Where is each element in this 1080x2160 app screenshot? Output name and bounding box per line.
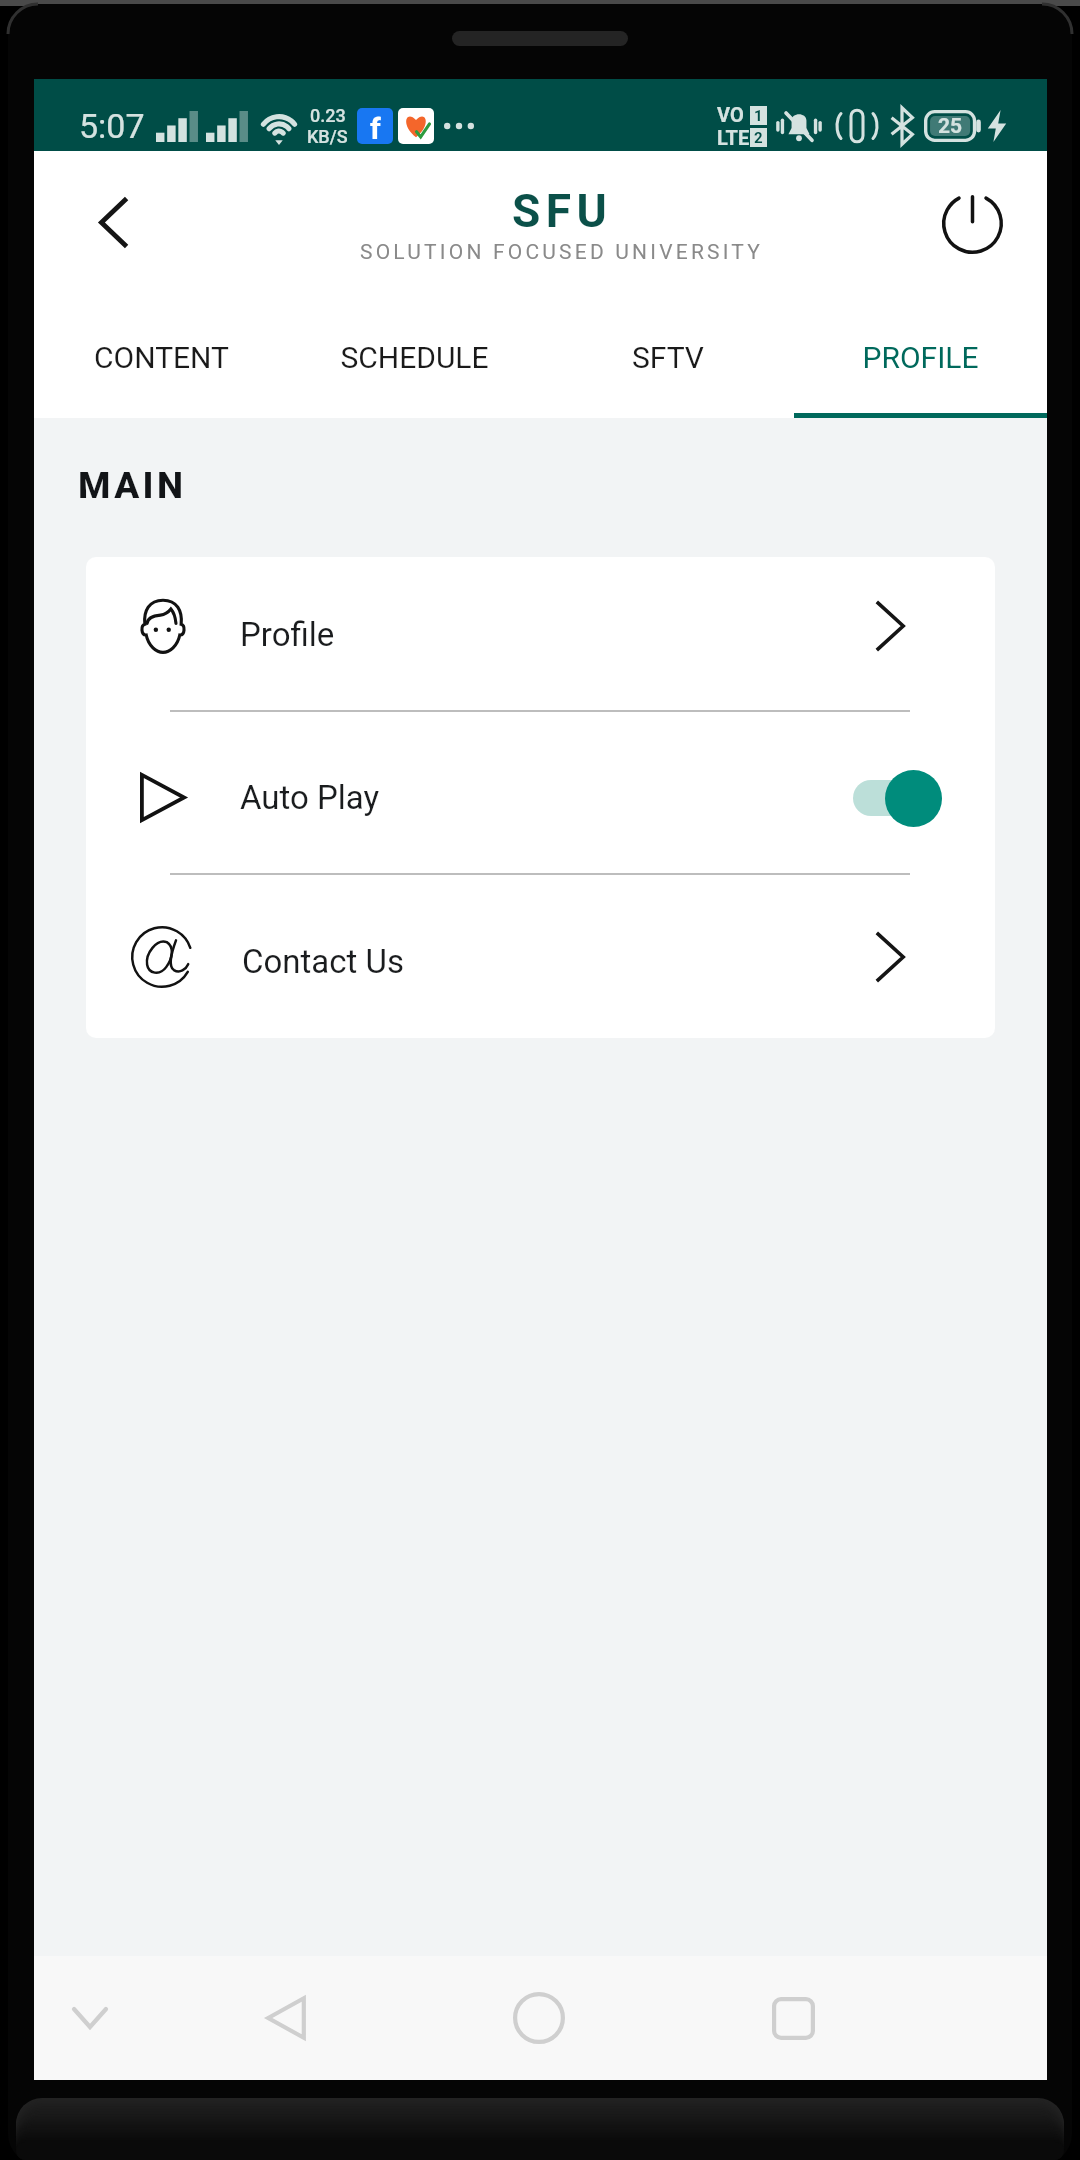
staticText: MAIN [78, 464, 187, 507]
button[interactable]: PROFILE [794, 306, 1047, 418]
button[interactable]: Profile [86, 557, 995, 710]
button[interactable]: Back [74, 186, 160, 272]
staticText: CONTENT [94, 340, 229, 375]
button[interactable]: SFTV [541, 306, 794, 418]
staticText: Auto Play [240, 778, 380, 817]
staticText: Contact Us [242, 942, 404, 981]
button[interactable]: SCHEDULE [288, 306, 541, 418]
staticText: SOLUTION FOCUSED UNIVERSITY [360, 240, 764, 265]
button[interactable]: Home [499, 1956, 579, 2080]
staticText: SFTV [632, 340, 704, 375]
button[interactable]: Recent apps [753, 1956, 833, 2080]
staticText: Profile [240, 615, 335, 654]
staticText: VO [717, 103, 744, 126]
button[interactable]: Contact Us [86, 875, 995, 1038]
button[interactable]: Auto Play [86, 712, 995, 873]
button[interactable]: Hide keyboard [50, 1956, 130, 2080]
button[interactable]: Auto Play toggle [885, 770, 942, 827]
button[interactable]: CONTENT [34, 306, 288, 418]
staticText: 1 [754, 107, 763, 125]
staticText: PROFILE [862, 340, 979, 375]
staticText: 0.23 [310, 105, 346, 126]
staticText: 25 [938, 114, 963, 139]
staticText: 2 [754, 129, 763, 147]
button[interactable]: Power [929, 186, 1015, 272]
staticText: SCHEDULE [340, 340, 489, 375]
staticText: LTE [717, 126, 750, 149]
staticText: 5:07 [79, 106, 145, 146]
button[interactable]: Back [246, 1956, 326, 2080]
staticText: KB/S [307, 126, 348, 147]
staticText: f [370, 111, 381, 144]
staticText: SFU [512, 184, 613, 238]
